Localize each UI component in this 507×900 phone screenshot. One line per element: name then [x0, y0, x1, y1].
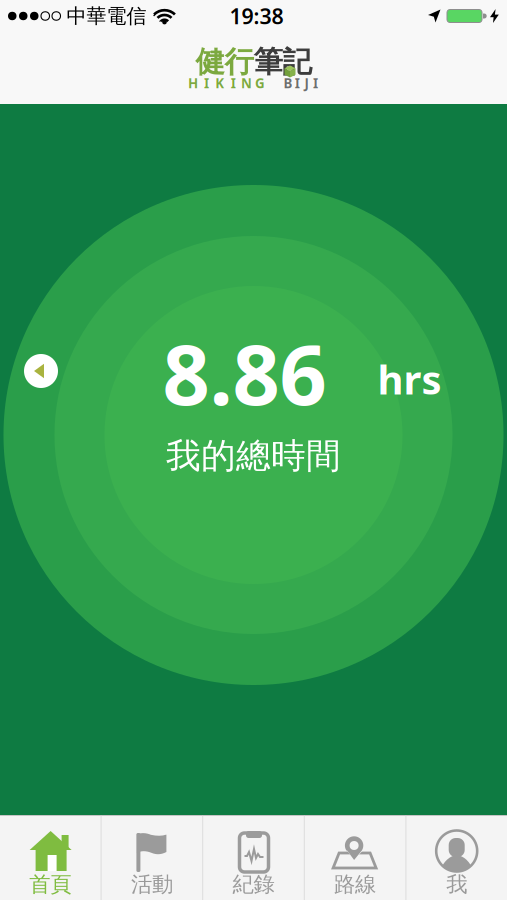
staticText: 8.86	[162, 318, 326, 428]
staticText: 路線	[334, 871, 376, 898]
staticText: 紀錄	[232, 871, 274, 898]
staticText: H	[188, 74, 198, 92]
staticText: B	[283, 74, 292, 92]
staticText: 我	[446, 871, 467, 898]
button[interactable]: 活動	[102, 816, 202, 900]
button[interactable]: 我	[406, 816, 507, 900]
staticText: G	[255, 74, 265, 92]
staticText: 中華電信	[66, 4, 146, 28]
staticText: I	[204, 74, 209, 92]
staticText: J	[304, 74, 308, 92]
staticText: K	[215, 74, 224, 92]
button[interactable]: 路線	[305, 816, 405, 900]
staticText: 健行	[195, 44, 253, 80]
staticText: N	[241, 74, 252, 92]
staticText: I	[313, 74, 318, 92]
staticText: 活動	[131, 871, 173, 898]
button[interactable]	[24, 354, 58, 388]
staticText: hrs	[377, 352, 441, 405]
staticText: 19:38	[229, 2, 283, 30]
staticText: 筆記	[253, 44, 311, 80]
staticText: I	[295, 74, 300, 92]
staticText: 我的總時間	[166, 435, 341, 477]
button[interactable]: 首頁	[0, 816, 101, 900]
staticText: 首頁	[29, 871, 71, 898]
button[interactable]: 紀錄	[203, 816, 304, 900]
staticText: I	[231, 74, 236, 92]
